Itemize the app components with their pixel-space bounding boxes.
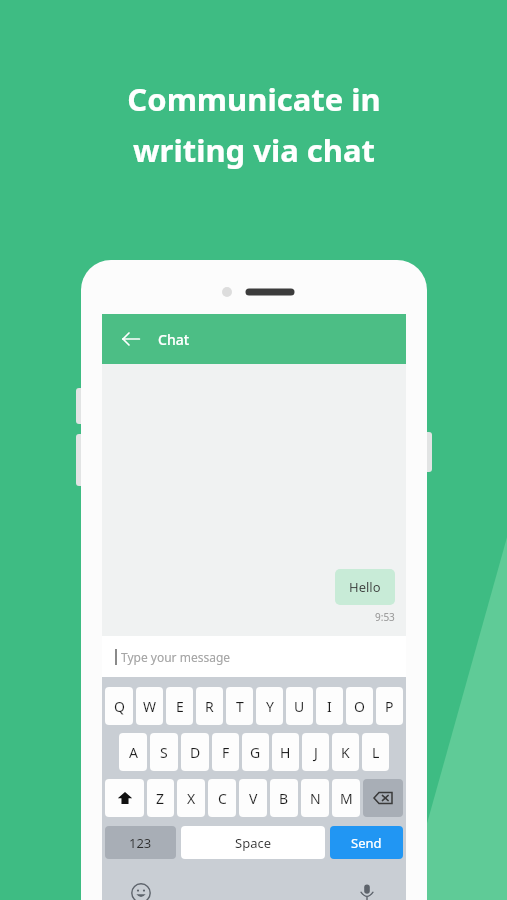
- button[interactable]: O: [346, 687, 373, 725]
- button[interactable]: Type your message: [102, 636, 406, 677]
- button[interactable]: Space: [181, 826, 325, 859]
- staticText: E: [176, 697, 184, 716]
- button[interactable]: X: [177, 779, 205, 817]
- button[interactable]: 123: [105, 826, 176, 859]
- button[interactable]: Send: [330, 826, 403, 859]
- button[interactable]: B: [270, 779, 298, 817]
- staticText: N: [310, 789, 321, 808]
- staticText: G: [250, 743, 261, 762]
- staticText: A: [129, 743, 138, 762]
- staticText: Communicate in: [127, 78, 381, 120]
- staticText: D: [190, 743, 201, 762]
- staticText: H: [280, 743, 291, 762]
- button[interactable]: S: [150, 733, 178, 771]
- staticText: J: [314, 743, 318, 762]
- button[interactable]: W: [136, 687, 163, 725]
- staticText: R: [205, 697, 214, 716]
- staticText: Chat: [158, 330, 190, 349]
- staticText: P: [385, 697, 394, 716]
- staticText: Z: [156, 789, 165, 808]
- staticText: O: [354, 697, 365, 716]
- staticText: writing via chat: [133, 129, 375, 171]
- staticText: Send: [351, 834, 382, 852]
- staticText: T: [236, 697, 244, 716]
- button[interactable]: F: [212, 733, 239, 771]
- staticText: M: [340, 789, 353, 808]
- staticText: W: [143, 697, 157, 716]
- button[interactable]: H: [272, 733, 299, 771]
- staticText: Hello: [349, 578, 381, 596]
- staticText: U: [294, 697, 305, 716]
- button[interactable]: L: [362, 733, 389, 771]
- button[interactable]: C: [208, 779, 236, 817]
- button[interactable]: I: [316, 687, 343, 725]
- button[interactable]: G: [242, 733, 269, 771]
- staticText: S: [160, 743, 168, 762]
- button[interactable]: E: [166, 687, 193, 725]
- button[interactable]: Shift: [105, 779, 144, 817]
- staticText: L: [372, 743, 380, 762]
- staticText: 9:53: [375, 610, 395, 624]
- staticText: C: [218, 789, 227, 808]
- button[interactable]: V: [239, 779, 267, 817]
- staticText: I: [327, 697, 332, 716]
- button[interactable]: R: [196, 687, 223, 725]
- button[interactable]: Z: [147, 779, 174, 817]
- button[interactable]: N: [301, 779, 329, 817]
- staticText: F: [222, 743, 230, 762]
- staticText: B: [279, 789, 289, 808]
- button[interactable]: Y: [256, 687, 283, 725]
- staticText: 123: [129, 834, 152, 852]
- button[interactable]: Voice input: [354, 880, 380, 900]
- staticText: Type your message: [121, 649, 231, 665]
- staticText: V: [249, 789, 258, 808]
- button[interactable]: Emoji: [128, 880, 154, 900]
- staticText: Q: [114, 697, 125, 716]
- staticText: Space: [235, 834, 271, 852]
- button[interactable]: P: [376, 687, 403, 725]
- staticText: Y: [266, 697, 274, 716]
- button[interactable]: M: [332, 779, 360, 817]
- staticText: K: [341, 743, 350, 762]
- button[interactable]: Back: [114, 322, 148, 356]
- staticText: X: [187, 789, 196, 808]
- button[interactable]: U: [286, 687, 313, 725]
- button[interactable]: D: [181, 733, 209, 771]
- button[interactable]: K: [332, 733, 359, 771]
- button[interactable]: Hello: [335, 569, 395, 605]
- button[interactable]: J: [302, 733, 329, 771]
- button[interactable]: Backspace: [363, 779, 403, 817]
- button[interactable]: Q: [105, 687, 133, 725]
- button[interactable]: T: [226, 687, 253, 725]
- button[interactable]: A: [119, 733, 147, 771]
